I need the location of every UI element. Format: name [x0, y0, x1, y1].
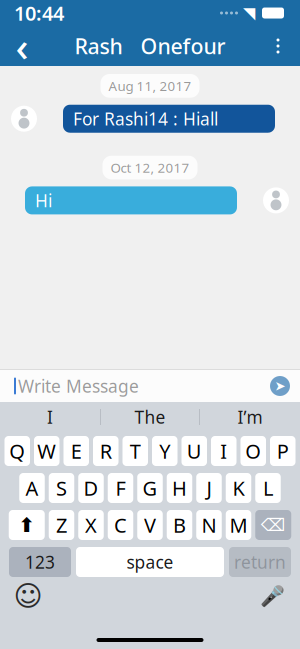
staticText: F	[115, 475, 125, 501]
staticText: Rash Onefour	[74, 32, 225, 60]
button[interactable]: C	[108, 510, 133, 540]
button[interactable]: Y	[152, 436, 177, 466]
staticText: P	[277, 438, 289, 464]
staticText: W	[37, 438, 56, 464]
button[interactable]: F	[108, 473, 133, 503]
button[interactable]: R	[93, 436, 118, 466]
staticText: D	[83, 475, 98, 501]
button[interactable]: I’m	[200, 403, 300, 431]
button[interactable]: O	[240, 436, 266, 466]
staticText: R	[100, 438, 112, 464]
staticText: For Rashi14 : Hiall	[73, 107, 218, 130]
button[interactable]: A	[19, 473, 45, 503]
staticText: 🎤	[259, 585, 284, 607]
staticText: K	[232, 475, 244, 501]
staticText: ◥	[243, 4, 255, 22]
staticText: I	[220, 438, 227, 464]
button[interactable]: N	[196, 510, 222, 540]
button[interactable]: V	[137, 510, 163, 540]
button[interactable]: K	[226, 473, 251, 503]
button[interactable]: D	[78, 473, 104, 503]
button[interactable]: S	[49, 473, 74, 503]
staticText: E	[71, 438, 82, 464]
button[interactable]: space	[76, 547, 224, 577]
staticText: Q	[9, 438, 25, 464]
staticText: H	[172, 475, 187, 501]
button[interactable]: B	[167, 510, 192, 540]
button[interactable]: I	[0, 403, 100, 431]
button[interactable]: Back	[0, 26, 44, 66]
staticText: Aug 11, 2017	[108, 77, 191, 95]
staticText: Z	[56, 512, 67, 538]
staticText: C	[114, 512, 127, 538]
staticText: 10:44	[14, 0, 64, 26]
button[interactable]: Z	[49, 510, 74, 540]
staticText: I’m	[237, 405, 262, 428]
button[interactable]: U	[181, 436, 207, 466]
button[interactable]: Send	[266, 372, 294, 400]
button[interactable]: 123	[9, 547, 71, 577]
staticText: G	[142, 475, 157, 501]
staticText: M	[229, 512, 247, 538]
button[interactable]: L	[255, 473, 281, 503]
staticText: Write Message	[18, 374, 139, 397]
staticText: T	[130, 438, 141, 464]
button[interactable]: I	[211, 436, 236, 466]
staticText: space	[126, 550, 173, 573]
button[interactable]: Delete	[255, 510, 291, 540]
button[interactable]: J	[196, 473, 222, 503]
button[interactable]: W	[34, 436, 59, 466]
staticText: A	[25, 475, 38, 501]
staticText: 123	[25, 550, 55, 573]
staticText: ➤	[274, 378, 285, 393]
button[interactable]: E	[63, 436, 89, 466]
staticText: ‹	[15, 19, 28, 72]
staticText: The	[134, 405, 165, 428]
button[interactable]: Dictate	[252, 581, 292, 611]
staticText: L	[263, 475, 273, 501]
button[interactable]: return	[229, 547, 291, 577]
staticText: ⌫	[261, 515, 286, 535]
button[interactable]: G	[137, 473, 163, 503]
staticText: Hi	[35, 189, 52, 212]
staticText: N	[201, 512, 216, 538]
button[interactable]: Emoji	[8, 581, 48, 611]
staticText: O	[245, 438, 261, 464]
staticText: S	[56, 475, 67, 501]
button[interactable]: H	[167, 473, 192, 503]
staticText: Oct 12, 2017	[110, 159, 189, 176]
staticText: U	[187, 438, 202, 464]
staticText: ⬆	[18, 514, 35, 536]
button[interactable]: More options	[256, 26, 300, 66]
button[interactable]: X	[78, 510, 104, 540]
staticText: ☺	[13, 580, 42, 612]
button[interactable]: P	[270, 436, 295, 466]
button[interactable]: Q	[4, 436, 30, 466]
staticText: B	[173, 512, 186, 538]
staticText: return	[234, 550, 286, 573]
staticText: Y	[159, 438, 170, 464]
staticText: J	[206, 475, 211, 501]
button[interactable]: Shift	[9, 510, 45, 540]
button[interactable]: M	[226, 510, 251, 540]
staticText: I	[47, 405, 53, 428]
button[interactable]: T	[122, 436, 148, 466]
staticText: X	[85, 512, 97, 538]
staticText: V	[144, 512, 156, 538]
button[interactable]: The	[101, 403, 199, 431]
